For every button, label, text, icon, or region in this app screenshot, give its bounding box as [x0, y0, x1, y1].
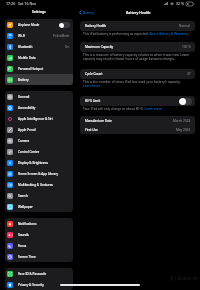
staticText: Battery	[83, 11, 94, 15]
staticText: Battery	[18, 78, 70, 82]
button[interactable]: Control Centre	[5, 146, 73, 157]
button[interactable]: Multitasking & Gestures	[5, 179, 73, 190]
button[interactable]: Apple Pencil	[5, 124, 73, 135]
button[interactable]: Battery	[77, 8, 97, 13]
staticText: Focus	[18, 244, 70, 248]
staticText: 100 %	[182, 45, 191, 49]
button[interactable]: Face ID & Passcode	[5, 268, 73, 279]
button[interactable]: Personal Hotspot	[5, 63, 73, 74]
staticText: Privacy & Security	[18, 283, 70, 287]
button[interactable]: Search	[5, 190, 73, 201]
button[interactable]: Sounds	[5, 229, 73, 240]
staticText: Search	[18, 194, 70, 198]
staticText: Face ID & Passcode	[18, 272, 70, 276]
button[interactable]: First Use	[80, 125, 195, 134]
staticText: Normal	[179, 24, 191, 28]
button[interactable]: Apple Intelligence & Siri	[5, 113, 73, 124]
button[interactable]: Mobile Data	[5, 52, 73, 63]
staticText: Control Centre	[18, 150, 70, 154]
button[interactable]: Accessibility	[5, 102, 73, 113]
staticText: @| Bazos.sk	[170, 275, 198, 281]
button[interactable]: Wallpaper	[5, 201, 73, 212]
staticText: Sounds	[18, 233, 70, 237]
button[interactable]: Camera	[5, 135, 73, 146]
staticText: 37	[187, 72, 191, 76]
button[interactable]: Notifications	[5, 218, 73, 229]
staticText: Battery Health	[126, 10, 151, 15]
staticText: PoliceMesh	[53, 34, 70, 38]
button[interactable]: Wi-Fi	[5, 30, 73, 41]
staticText: Wallpaper	[18, 205, 70, 209]
staticText: Wi-Fi	[18, 34, 53, 38]
staticText: This iPad battery is performing as expec…	[83, 32, 189, 36]
button[interactable]: General	[5, 91, 73, 102]
staticText: Cycle Count	[85, 72, 103, 76]
staticText: This is the number of times iPad has use…	[83, 80, 181, 88]
button[interactable]: Bluetooth	[5, 41, 73, 52]
staticText: General	[18, 95, 70, 99]
staticText: 17:26	[6, 1, 16, 6]
button[interactable]: Home Screen & App Library	[5, 168, 73, 179]
button[interactable]: 80 % Limit	[80, 96, 195, 106]
staticText: Notifications	[18, 222, 70, 226]
staticText: Display & Brightness	[18, 161, 70, 165]
button[interactable]: Screen Time	[5, 251, 73, 262]
staticText: 32 %	[176, 1, 185, 6]
staticText: On	[65, 45, 70, 49]
button[interactable]: Maximum Capacity	[80, 42, 195, 52]
button[interactable]: Cycle Count	[80, 69, 195, 79]
staticText: Personal Hotspot	[18, 67, 70, 71]
staticText: Apple Pencil	[18, 128, 70, 132]
staticText: Multitasking & Gestures	[18, 183, 70, 187]
staticText: Apple Intelligence & Siri	[18, 117, 70, 121]
staticText: Sat 16 Nov	[18, 1, 37, 6]
staticText: Manufacture Date	[85, 119, 112, 123]
button[interactable]: Display & Brightness	[5, 157, 73, 168]
staticText: Camera	[18, 139, 70, 143]
staticText: Bluetooth	[18, 45, 65, 49]
staticText: Your iPad will only charge to about 80 %…	[83, 107, 163, 111]
staticText: Settings	[32, 9, 46, 14]
staticText: First Use	[85, 128, 98, 132]
staticText: March 2024	[173, 119, 191, 123]
staticText: Mobile Data	[18, 56, 70, 60]
staticText: Airplane Mode	[18, 23, 59, 27]
staticText: Accessibility	[18, 106, 70, 110]
staticText: Battery Health	[85, 24, 107, 28]
button[interactable]: Airplane Mode	[5, 19, 73, 30]
staticText: Screen Time	[18, 255, 70, 259]
staticText: Home Screen & App Library	[18, 172, 70, 176]
button[interactable]: Privacy & Security	[5, 279, 73, 290]
staticText: This is a measure of battery capacity re…	[83, 53, 190, 61]
staticText: Maximum Capacity	[85, 45, 114, 49]
staticText: May 2024	[176, 128, 191, 132]
button[interactable]: Battery Health	[80, 21, 195, 31]
button[interactable]: Focus	[5, 240, 73, 251]
button[interactable]: Manufacture Date	[80, 116, 195, 125]
button[interactable]: Battery	[5, 74, 73, 85]
staticText: 80 % Limit	[85, 99, 101, 103]
